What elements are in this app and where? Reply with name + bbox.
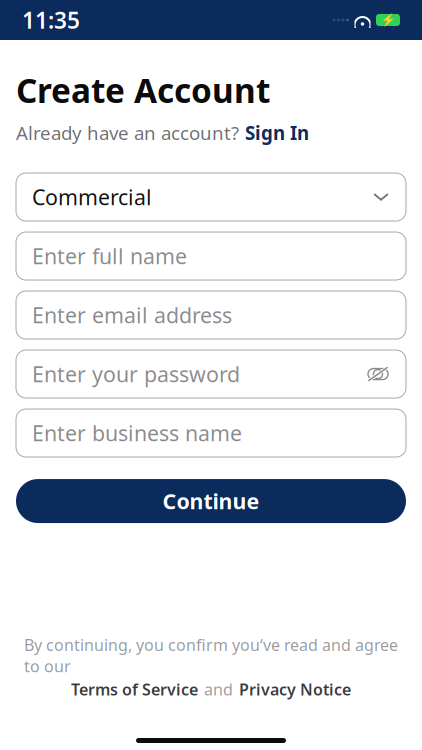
staticText: Commercial	[32, 183, 152, 211]
button[interactable]: Terms of Service	[71, 679, 198, 700]
button[interactable]: Commercial	[16, 173, 406, 221]
staticText: 11:35	[22, 5, 80, 35]
button[interactable]: Enter full name	[16, 232, 406, 280]
staticText: ⚡	[380, 13, 395, 27]
button[interactable]: Enter your password	[16, 350, 406, 398]
button[interactable]: Privacy Notice	[239, 679, 351, 700]
staticText: Privacy Notice	[239, 679, 351, 700]
staticText: Sign In	[245, 120, 309, 145]
staticText: Create Account	[16, 68, 270, 112]
staticText: Enter business name	[32, 419, 242, 447]
staticText: Terms of Service	[71, 679, 198, 700]
staticText: Already have an account?	[16, 120, 239, 145]
staticText: Enter your password	[32, 360, 240, 388]
staticText: Continue	[162, 487, 259, 515]
staticText: By continuing, you confirm you‘ve read a…	[24, 634, 398, 677]
button[interactable]: Sign In	[245, 120, 309, 145]
button[interactable]: Continue	[16, 479, 406, 523]
button[interactable]: Enter email address	[16, 291, 406, 339]
staticText: and	[204, 679, 233, 700]
staticText: Enter email address	[32, 301, 232, 329]
staticText: Enter full name	[32, 242, 187, 270]
button[interactable]: Enter business name	[16, 409, 406, 457]
